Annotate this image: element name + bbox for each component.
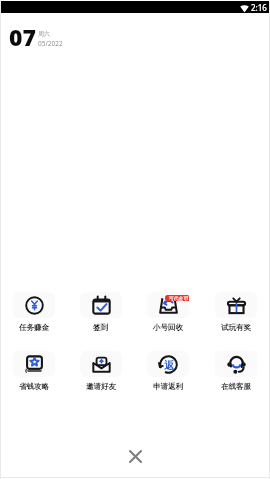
- button[interactable]: 省钱攻略: [0, 351, 67, 391]
- staticText: 邀请好友: [86, 382, 116, 391]
- button[interactable]: 任务赚金: [0, 292, 67, 332]
- staticText: 签到: [93, 323, 108, 332]
- button[interactable]: 关闭: [122, 443, 148, 469]
- staticText: 05/2022: [38, 39, 63, 48]
- staticText: 返: [164, 359, 175, 372]
- staticText: 在线客服: [221, 382, 251, 391]
- staticText: 任务赚金: [19, 323, 49, 332]
- staticText: 2:16: [251, 2, 267, 13]
- button[interactable]: 可代金币: [134, 292, 202, 332]
- button[interactable]: 签到: [67, 292, 134, 332]
- button[interactable]: 邀请好友: [67, 351, 134, 391]
- staticText: 试玩有奖: [221, 323, 251, 332]
- staticText: 小号回收: [153, 323, 183, 332]
- button[interactable]: 返: [134, 351, 202, 391]
- staticText: 申请返利: [153, 382, 183, 391]
- staticText: 可代金币: [169, 295, 189, 301]
- staticText: 省钱攻略: [19, 382, 49, 391]
- button[interactable]: 试玩有奖: [202, 292, 270, 332]
- staticText: 周六: [38, 30, 50, 38]
- staticText: 07: [9, 21, 36, 52]
- button[interactable]: 在线客服: [202, 351, 270, 391]
